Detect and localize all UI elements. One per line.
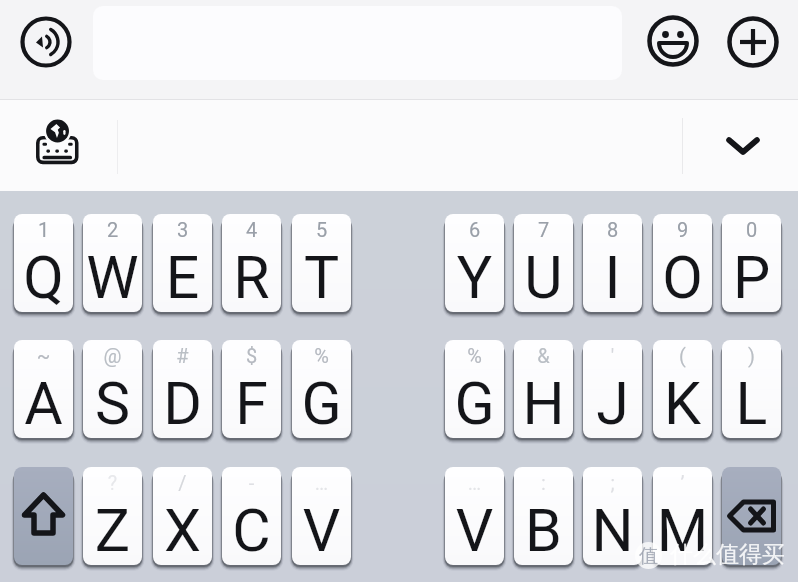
button[interactable]: ’ [653,467,712,565]
staticText: X [153,496,212,565]
staticText: K [653,369,712,438]
staticText: ; [583,471,642,565]
button[interactable]: # [153,340,212,438]
button[interactable]: Shift [14,467,73,565]
staticText: Y [445,243,504,312]
staticText: ) [722,344,781,438]
staticText: J [583,369,642,438]
staticText: 1 [14,218,73,312]
staticText: @ [83,344,142,438]
staticText: 4 [222,218,281,312]
button[interactable]: … [445,467,504,565]
staticText: 6 [445,218,504,312]
staticText: T [292,243,351,312]
button[interactable]: % [445,340,504,438]
staticText: … [292,471,351,565]
staticText: U [514,243,573,312]
staticText: ? [83,471,142,565]
button[interactable]: 4 [222,214,281,312]
staticText: 9 [653,218,712,312]
button[interactable]: % [292,340,351,438]
button[interactable]: … [292,467,351,565]
staticText: / [153,471,212,565]
button[interactable]: ' [583,340,642,438]
staticText: C [222,496,281,565]
button[interactable]: Switch keyboard language [30,114,84,168]
staticText: $ [222,344,281,438]
button[interactable]: 2 [83,214,142,312]
staticText: R [222,243,281,312]
staticText: & [514,344,573,438]
staticText: V [292,496,351,565]
button[interactable]: & [514,340,573,438]
staticText: G [292,369,351,438]
staticText: H [514,369,573,438]
button[interactable]: 5 [292,214,351,312]
button[interactable]: Add [727,16,779,68]
button[interactable]: / [153,467,212,565]
staticText: M [653,496,712,565]
staticText: 5 [292,218,351,312]
button[interactable]: 0 [722,214,781,312]
button[interactable]: @ [83,340,142,438]
staticText: : [514,471,573,565]
button[interactable]: : [514,467,573,565]
staticText: 0 [722,218,781,312]
staticText: ' [583,344,642,438]
button[interactable]: 3 [153,214,212,312]
staticText: - [222,471,281,565]
staticText: W [83,243,142,312]
staticText: G [445,369,504,438]
staticText: 3 [153,218,212,312]
staticText: 8 [583,218,642,312]
staticText: # [153,344,212,438]
button[interactable]: 7 [514,214,573,312]
staticText: Q [14,243,73,312]
button[interactable]: ) [722,340,781,438]
button[interactable]: Emoji [647,15,699,67]
staticText: V [445,496,504,565]
staticText: N [583,496,642,565]
button[interactable]: 8 [583,214,642,312]
button[interactable]: Voice input [20,16,72,68]
button[interactable]: Hide keyboard [714,117,772,175]
staticText: F [222,369,281,438]
staticText: 7 [514,218,573,312]
staticText: B [514,496,573,565]
staticText: ~ [14,344,73,438]
staticText: O [653,243,712,312]
button[interactable]: $ [222,340,281,438]
staticText: … [445,471,504,565]
staticText: % [292,344,351,438]
staticText: D [153,369,212,438]
staticText: ’ [653,471,712,565]
button[interactable]: 1 [14,214,73,312]
staticText: % [445,344,504,438]
button[interactable]: ( [653,340,712,438]
button[interactable]: - [222,467,281,565]
button[interactable]: Backspace [722,467,781,565]
staticText: ( [653,344,712,438]
staticText: 2 [83,218,142,312]
staticText: 什么值得买 [670,540,785,569]
staticText: 值 [639,544,658,568]
staticText: E [153,243,212,312]
staticText: A [14,369,73,438]
staticText: P [722,243,781,312]
staticText: L [722,369,781,438]
button[interactable]: 9 [653,214,712,312]
button[interactable]: ~ [14,340,73,438]
staticText: S [83,369,142,438]
button[interactable]: ; [583,467,642,565]
button[interactable]: ? [83,467,142,565]
staticText: Z [83,496,142,565]
button[interactable]: 6 [445,214,504,312]
staticText: I [583,243,642,312]
